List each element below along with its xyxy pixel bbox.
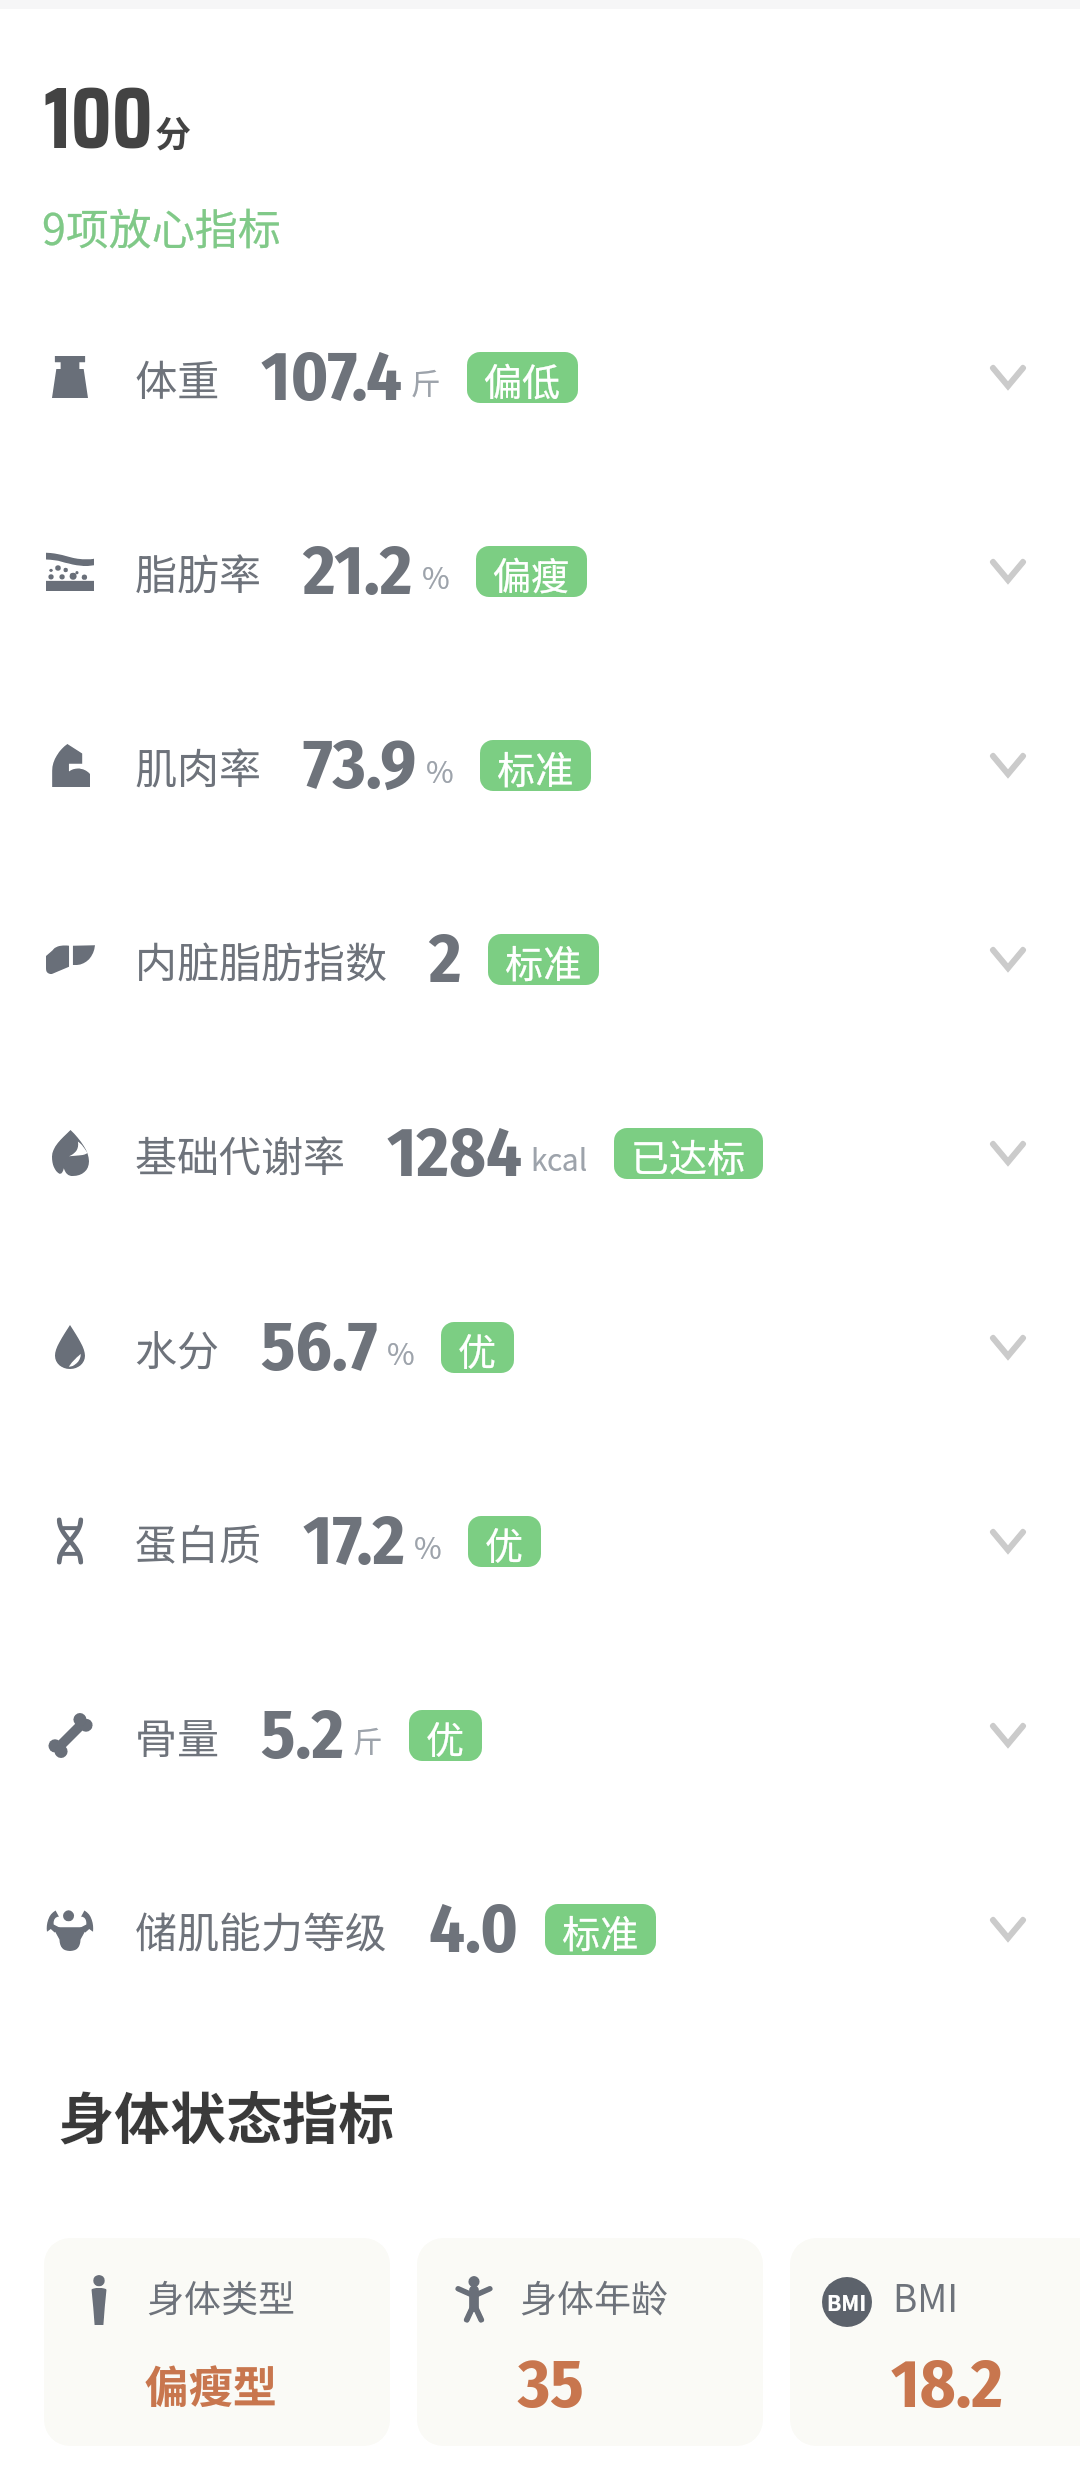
- button[interactable]: 内脏脂肪指数: [0, 862, 1080, 1056]
- button[interactable]: 脂肪率: [0, 474, 1080, 668]
- staticText: 偏低: [484, 352, 561, 403]
- button[interactable]: Expand details: [970, 339, 1046, 415]
- staticText: %: [414, 1524, 442, 1567]
- staticText: 身体年龄: [520, 2269, 668, 2323]
- button[interactable]: 肌肉率: [0, 668, 1080, 862]
- staticText: 5.2: [261, 1693, 344, 1777]
- staticText: 17.2: [303, 1499, 405, 1583]
- staticText: 偏瘦型: [145, 2352, 277, 2416]
- staticText: 分: [155, 105, 192, 157]
- staticText: %: [422, 554, 450, 597]
- staticText: 标准: [497, 740, 574, 791]
- staticText: kcal: [531, 1136, 588, 1179]
- staticText: 优: [458, 1322, 497, 1373]
- button[interactable]: Expand details: [970, 921, 1046, 997]
- staticText: 水分: [135, 1317, 220, 1378]
- staticText: 蛋白质: [135, 1511, 262, 1572]
- button[interactable]: 水分: [0, 1250, 1080, 1444]
- staticText: 100: [44, 50, 153, 185]
- button[interactable]: 储肌能力等级: [0, 1832, 1080, 2026]
- staticText: 内脏脂肪指数: [135, 929, 388, 990]
- staticText: 标准: [505, 934, 582, 985]
- staticText: %: [426, 748, 454, 791]
- button[interactable]: Expand details: [970, 533, 1046, 609]
- button[interactable]: 身体年龄: [417, 2238, 763, 2446]
- staticText: BMI: [893, 2269, 959, 2323]
- button[interactable]: Expand details: [970, 1309, 1046, 1385]
- staticText: 4.0: [429, 1887, 519, 1971]
- staticText: 优: [485, 1516, 524, 1567]
- staticText: 体重: [135, 347, 220, 408]
- staticText: 脂肪率: [135, 541, 262, 602]
- staticText: 21.2: [303, 529, 413, 613]
- button[interactable]: Expand details: [970, 1697, 1046, 1773]
- staticText: 优: [426, 1710, 465, 1761]
- staticText: 骨量: [135, 1705, 220, 1766]
- button[interactable]: 基础代谢率: [0, 1056, 1080, 1250]
- button[interactable]: 蛋白质: [0, 1444, 1080, 1638]
- staticText: 1284: [387, 1111, 522, 1195]
- staticText: 2: [429, 917, 462, 1001]
- staticText: 肌肉率: [135, 735, 262, 796]
- button[interactable]: 身体类型: [44, 2238, 390, 2446]
- staticText: 偏瘦: [493, 546, 570, 597]
- staticText: 107.4: [261, 335, 402, 419]
- button[interactable]: Expand details: [970, 1115, 1046, 1191]
- staticText: %: [387, 1330, 415, 1373]
- button[interactable]: Expand details: [970, 727, 1046, 803]
- button[interactable]: BMI: [790, 2238, 1080, 2446]
- staticText: 标准: [562, 1904, 639, 1955]
- staticText: 身体状态指标: [58, 2074, 394, 2155]
- staticText: 73.9: [303, 723, 417, 807]
- staticText: 储肌能力等级: [135, 1899, 388, 1960]
- staticText: BMI: [827, 2287, 867, 2317]
- staticText: 身体类型: [147, 2269, 295, 2323]
- staticText: 35: [518, 2343, 584, 2425]
- button[interactable]: 体重: [0, 280, 1080, 474]
- staticText: 已达标: [631, 1128, 746, 1179]
- staticText: 斤: [353, 1718, 383, 1761]
- staticText: 斤: [411, 360, 441, 403]
- staticText: 9项放心指标: [42, 195, 281, 257]
- staticText: 56.7: [261, 1305, 378, 1389]
- staticText: 18.2: [891, 2343, 1003, 2425]
- staticText: 基础代谢率: [135, 1123, 346, 1184]
- button[interactable]: Expand details: [970, 1891, 1046, 1967]
- button[interactable]: 骨量: [0, 1638, 1080, 1832]
- button[interactable]: Expand details: [970, 1503, 1046, 1579]
